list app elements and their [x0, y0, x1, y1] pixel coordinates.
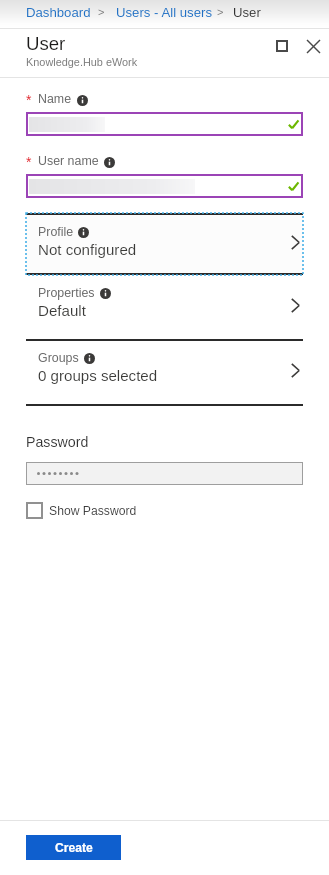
staticText: Properties — [38, 286, 95, 300]
staticText: Default — [38, 302, 86, 319]
button[interactable]: Groups — [26, 340, 303, 404]
staticText: Create — [55, 841, 93, 855]
button[interactable]: Show Password — [26, 502, 137, 519]
staticText: Knowledge.Hub eWork — [26, 56, 138, 68]
staticText: Password — [26, 434, 89, 450]
button[interactable]: Users - All users — [116, 5, 212, 20]
button[interactable]: Properties — [26, 275, 303, 339]
staticText: Show Password — [49, 504, 137, 518]
staticText: 0 groups selected — [38, 367, 158, 384]
button[interactable] — [26, 462, 303, 485]
button[interactable]: Dashboard — [26, 5, 91, 20]
staticText: Users - All users — [116, 5, 212, 20]
staticText: User — [233, 5, 261, 20]
staticText: > — [98, 6, 105, 18]
staticText: Dashboard — [26, 5, 91, 20]
staticText: Name — [38, 92, 72, 106]
staticText: Groups — [38, 351, 79, 365]
staticText: > — [217, 6, 224, 18]
button[interactable] — [26, 174, 303, 198]
button[interactable]: Close — [299, 33, 327, 59]
staticText: * — [26, 154, 32, 170]
button[interactable] — [26, 112, 303, 136]
staticText: User name — [38, 154, 99, 168]
staticText: Profile — [38, 225, 74, 239]
staticText: Not configured — [38, 241, 137, 258]
staticText: User — [26, 33, 66, 54]
button[interactable]: Profile — [26, 214, 303, 274]
button[interactable]: Maximize — [268, 33, 296, 59]
staticText: * — [26, 92, 32, 108]
button[interactable]: Create — [26, 835, 121, 860]
